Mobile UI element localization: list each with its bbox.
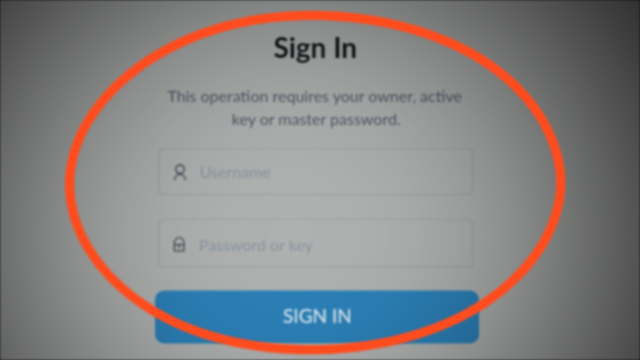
button[interactable]: Password or key field [158, 219, 473, 267]
button[interactable]: Username field [159, 148, 473, 195]
button[interactable]: Sign in [155, 290, 479, 343]
